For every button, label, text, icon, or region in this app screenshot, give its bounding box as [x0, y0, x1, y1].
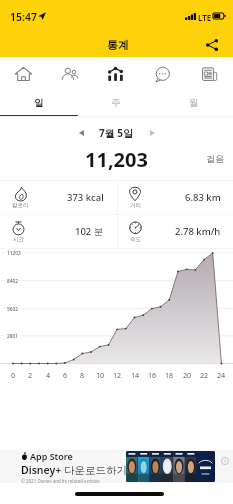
- staticText: 8402: [7, 278, 18, 285]
- button[interactable]: 칼로리: [0, 181, 116, 214]
- staticText: 2: [28, 370, 33, 380]
- staticText: 8: [80, 370, 85, 380]
- staticText: Disney+ 다운로드하기: [21, 463, 127, 477]
- staticText: 14: [131, 370, 140, 380]
- button[interactable]: Friends: [46, 57, 92, 91]
- button[interactable]: News: [186, 57, 233, 91]
- staticText: 일: [34, 97, 44, 109]
- staticText: 걸음: [206, 153, 224, 164]
- staticText: 15:47: [10, 10, 37, 24]
- staticText: 18: [165, 370, 174, 380]
- staticText: 16: [148, 370, 157, 380]
- staticText: 통계: [107, 38, 129, 52]
- staticText: 7월 5일: [99, 126, 134, 140]
- staticText: 월: [189, 97, 199, 109]
- staticText: 11,203: [85, 146, 148, 173]
- button[interactable]: 일: [0, 91, 77, 117]
- button[interactable]: App Store: [0, 450, 233, 483]
- staticText: © 2021 Disney and its related entities: [21, 478, 100, 483]
- staticText: 4: [46, 370, 51, 380]
- staticText: LTE: [198, 12, 212, 23]
- staticText: App Store: [30, 450, 73, 462]
- button[interactable]: Share: [200, 33, 224, 57]
- staticText: 22: [200, 370, 209, 380]
- staticText: 6: [63, 370, 68, 380]
- staticText: 주: [111, 97, 121, 109]
- staticText: 거리: [130, 202, 141, 209]
- button[interactable]: Next day: [143, 124, 161, 142]
- staticText: 20: [183, 370, 192, 380]
- button[interactable]: 시간: [0, 215, 116, 248]
- staticText: 102 분: [75, 225, 104, 238]
- staticText: 2.78 km/h: [175, 225, 221, 238]
- staticText: 11203: [7, 250, 21, 257]
- button[interactable]: 주: [77, 91, 155, 117]
- staticText: 12: [113, 370, 122, 380]
- staticText: 10: [96, 370, 105, 380]
- button[interactable]: Previous day: [72, 124, 90, 142]
- staticText: 6.83 km: [185, 191, 221, 204]
- button[interactable]: Chat: [139, 57, 186, 91]
- staticText: 시간: [13, 236, 24, 243]
- button[interactable]: Stats: [92, 57, 139, 91]
- staticText: 0: [11, 370, 16, 380]
- button[interactable]: 거리: [117, 181, 233, 214]
- button[interactable]: 속도: [117, 215, 233, 248]
- staticText: 24: [217, 370, 226, 380]
- button[interactable]: 통계: [95, 33, 140, 57]
- staticText: 5602: [7, 306, 18, 313]
- staticText: 칼로리: [12, 202, 29, 209]
- staticText: 2801: [7, 333, 18, 340]
- button[interactable]: Home: [0, 57, 46, 91]
- staticText: 373 kcal: [67, 191, 104, 204]
- button[interactable]: 월: [155, 91, 233, 117]
- staticText: 속도: [130, 236, 141, 243]
